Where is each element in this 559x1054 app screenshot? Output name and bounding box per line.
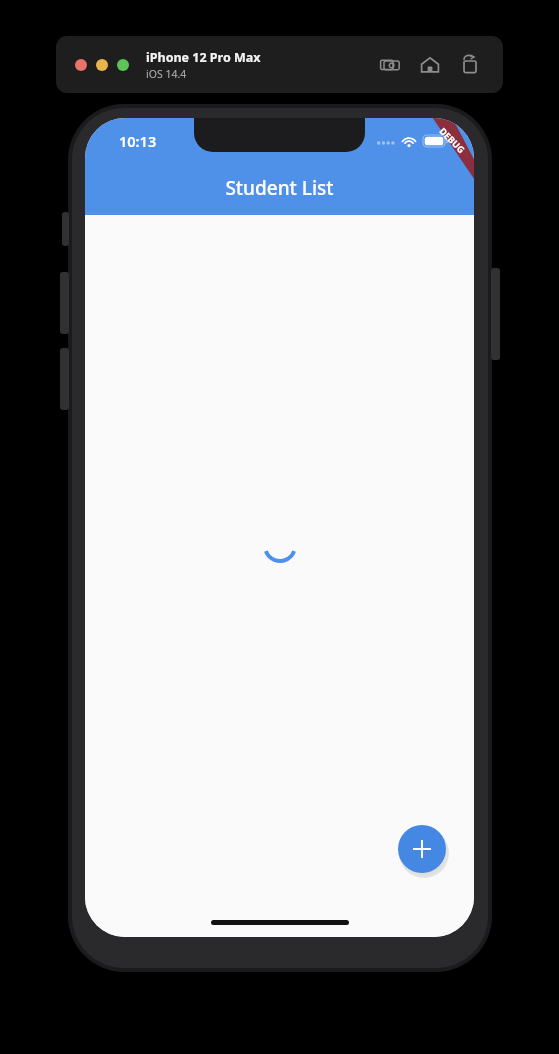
staticText: Student List: [225, 175, 334, 201]
staticText: 10:13: [119, 131, 157, 151]
button[interactable]: Rotate: [455, 50, 485, 80]
button[interactable]: [117, 59, 129, 71]
button[interactable]: [96, 59, 108, 71]
staticText: iOS 14.4: [146, 67, 187, 81]
button[interactable]: [75, 59, 87, 71]
staticText: DEBUG: [437, 125, 468, 155]
button[interactable]: Screenshot: [375, 50, 405, 80]
button[interactable]: Home: [415, 50, 445, 80]
staticText: iPhone 12 Pro Max: [146, 49, 261, 66]
button[interactable]: Add student: [398, 825, 446, 873]
